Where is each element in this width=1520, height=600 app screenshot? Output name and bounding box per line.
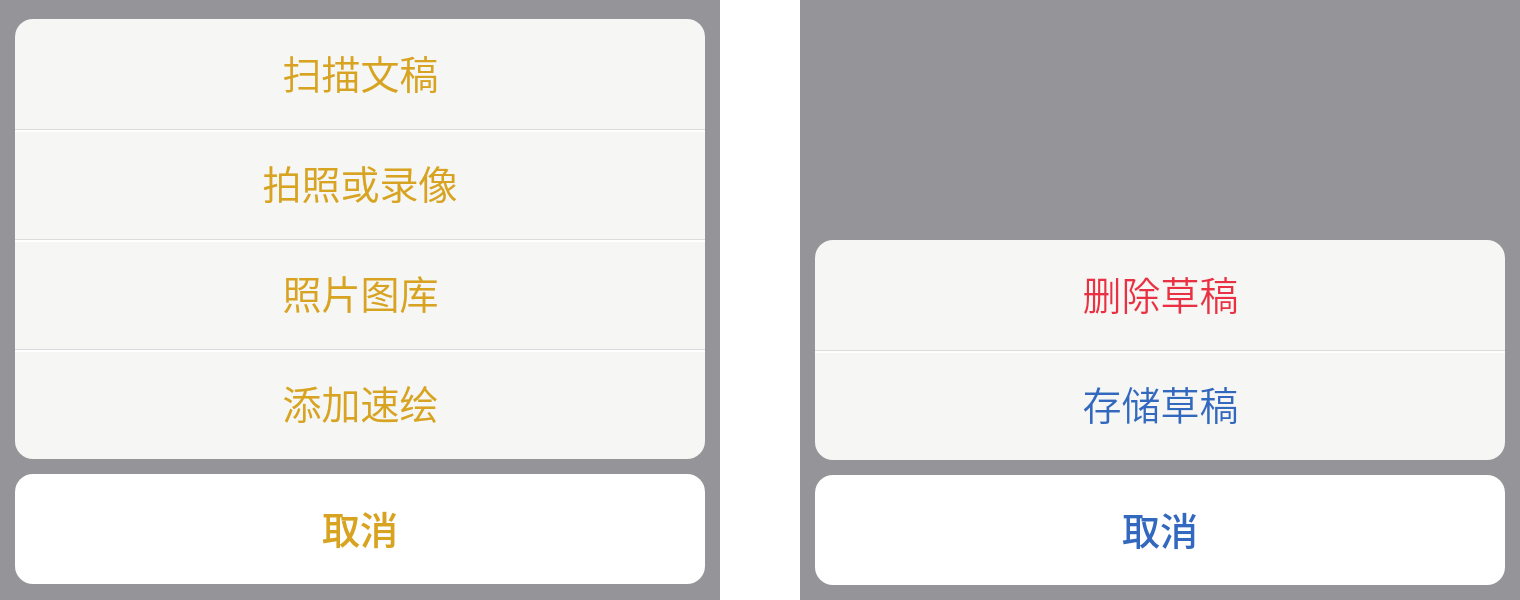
button[interactable]: 取消 <box>15 474 705 584</box>
button[interactable]: 扫描文稿 <box>15 19 705 129</box>
staticText: 删除草稿 <box>1082 265 1239 321</box>
staticText: 取消 <box>322 500 399 555</box>
staticText: 照片图库 <box>282 264 439 320</box>
staticText: 扫描文稿 <box>282 44 439 100</box>
button[interactable]: 照片图库 <box>15 239 705 349</box>
button[interactable]: 拍照或录像 <box>15 129 705 239</box>
staticText: 添加速绘 <box>282 374 439 430</box>
button[interactable]: 删除草稿 <box>815 240 1505 350</box>
staticText: 存储草稿 <box>1082 375 1239 431</box>
button[interactable]: 存储草稿 <box>815 350 1505 460</box>
button[interactable]: 取消 <box>815 475 1505 585</box>
staticText: 拍照或录像 <box>262 154 458 210</box>
staticText: 取消 <box>1122 501 1199 556</box>
button[interactable]: 添加速绘 <box>15 349 705 459</box>
